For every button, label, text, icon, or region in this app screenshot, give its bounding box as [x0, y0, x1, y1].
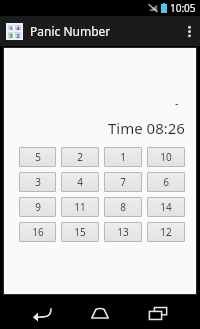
staticText: 5 — [35, 150, 41, 164]
button[interactable]: 10 — [147, 147, 185, 167]
button[interactable]: 14 — [147, 197, 185, 217]
staticText: 16 — [32, 225, 44, 239]
staticText: 12 — [160, 225, 172, 239]
staticText: Panic Number — [30, 23, 111, 39]
button[interactable]: 3 — [19, 172, 56, 192]
staticText: 8 — [120, 200, 126, 214]
button[interactable]: 12 — [147, 222, 185, 242]
staticText: 7 — [120, 175, 126, 189]
staticText: 13 — [117, 225, 129, 239]
button[interactable]: Home — [77, 298, 123, 328]
button[interactable]: 1 — [104, 147, 142, 167]
staticText: 10:05 — [170, 1, 196, 15]
staticText: 4 — [16, 25, 20, 30]
button[interactable]: 13 — [104, 222, 142, 242]
staticText: 1 — [9, 25, 13, 30]
button[interactable]: Back — [19, 298, 65, 328]
staticText: - — [175, 95, 179, 110]
button[interactable]: 6 — [147, 172, 185, 192]
staticText: 6 — [163, 175, 169, 189]
staticText: 3 — [35, 175, 41, 189]
button[interactable]: More options — [178, 16, 200, 46]
staticText: 9 — [35, 200, 41, 214]
button[interactable]: 7 — [104, 172, 142, 192]
button[interactable]: 9 — [19, 197, 56, 217]
staticText: 15 — [74, 225, 86, 239]
staticText: 3 — [9, 32, 13, 38]
button[interactable]: 2 — [61, 147, 99, 167]
staticText: Time 08:26 — [108, 118, 185, 138]
button[interactable]: 4 — [61, 172, 99, 192]
staticText: 1 — [120, 150, 126, 164]
button[interactable]: 8 — [104, 197, 142, 217]
button[interactable]: 5 — [19, 147, 56, 167]
button[interactable]: 15 — [61, 222, 99, 242]
staticText: 14 — [160, 200, 172, 214]
button[interactable]: 11 — [61, 197, 99, 217]
staticText: 2 — [16, 32, 20, 38]
button[interactable]: Recent apps — [135, 298, 181, 328]
staticText: 11 — [74, 200, 86, 214]
button[interactable]: 16 — [19, 222, 56, 242]
staticText: 10 — [160, 150, 172, 164]
staticText: 4 — [77, 175, 83, 189]
staticText: 2 — [77, 150, 83, 164]
